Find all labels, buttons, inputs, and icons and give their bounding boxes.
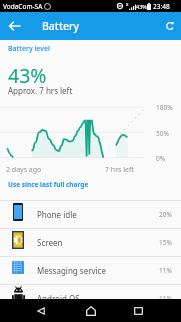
staticText: 11% <box>159 294 172 303</box>
staticText: 0% <box>156 154 166 163</box>
button[interactable]: Recent apps <box>122 299 155 322</box>
staticText: 50% <box>156 129 169 138</box>
staticText: Use since last full charge <box>8 180 89 189</box>
staticText: 7 hrs left <box>105 165 134 175</box>
button[interactable]: Refresh <box>157 13 181 39</box>
button[interactable]: Screen <box>0 229 181 256</box>
staticText: 15% <box>159 238 172 247</box>
staticText: 43% <box>8 62 47 89</box>
staticText: Screen <box>37 237 63 248</box>
staticText: Approx. 7 hrs left <box>8 85 73 96</box>
staticText: Battery <box>42 19 79 33</box>
staticText: Phone idle <box>37 209 77 220</box>
button[interactable]: Messaging service <box>0 257 181 284</box>
staticText: Android OS <box>37 293 80 304</box>
button[interactable]: Android OS <box>0 285 181 312</box>
staticText: 20% <box>159 210 172 219</box>
staticText: 2 days ago <box>6 165 42 175</box>
staticText: Messaging service <box>37 265 106 276</box>
button[interactable]: Home <box>74 299 107 322</box>
button[interactable]: Phone idle <box>0 201 181 228</box>
staticText: 43% <box>136 3 147 10</box>
button[interactable]: Navigate up <box>2 13 28 39</box>
staticText: 23:48 <box>153 2 170 11</box>
staticText: 11% <box>159 266 172 275</box>
button[interactable]: Back <box>25 299 57 322</box>
staticText: x <box>126 1 129 7</box>
staticText: VodaCom-SA <box>3 2 43 11</box>
staticText: 100% <box>156 103 173 112</box>
staticText: Battery level <box>8 44 50 54</box>
